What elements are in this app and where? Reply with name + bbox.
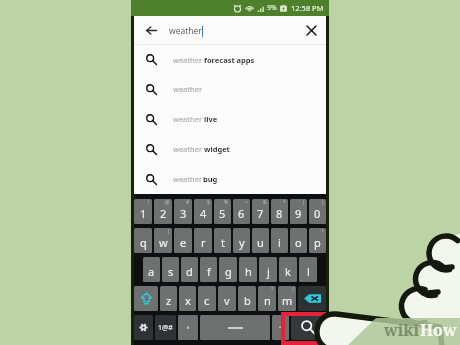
button[interactable]: * xyxy=(271,199,288,224)
button[interactable]: z xyxy=(160,286,177,311)
staticText: weather xyxy=(173,144,204,154)
button[interactable]: | xyxy=(154,228,172,253)
button[interactable]: + xyxy=(309,228,326,253)
staticText: 1 xyxy=(140,206,147,221)
button[interactable]: u xyxy=(252,228,269,253)
button[interactable]: , xyxy=(178,315,198,340)
button[interactable]: s xyxy=(162,257,179,282)
button[interactable]: / xyxy=(278,286,296,311)
button[interactable]: y xyxy=(233,228,250,253)
staticText: $ xyxy=(207,199,210,206)
button[interactable]: h xyxy=(239,257,257,282)
button[interactable]: ? xyxy=(258,286,276,311)
button[interactable]: Backspace xyxy=(298,286,326,311)
button[interactable]: weather xyxy=(134,74,326,104)
button[interactable]: % xyxy=(214,199,231,224)
staticText: n xyxy=(264,293,271,308)
staticText: q xyxy=(140,235,147,250)
staticText: # xyxy=(186,199,190,206)
button[interactable]: l xyxy=(299,257,317,282)
staticText: r xyxy=(201,235,206,250)
button[interactable]: ) xyxy=(309,199,326,224)
button[interactable]: Clear search xyxy=(296,16,326,45)
button[interactable]: q xyxy=(134,228,152,253)
button[interactable]: weather xyxy=(134,104,326,134)
staticText: 9% xyxy=(267,3,277,13)
button[interactable]: r xyxy=(194,228,212,253)
staticText: + xyxy=(321,228,324,235)
button[interactable]: . xyxy=(272,315,289,340)
staticText: x xyxy=(185,293,191,308)
button[interactable]: g xyxy=(219,257,237,282)
button[interactable]: weather xyxy=(134,134,326,164)
button[interactable]: 1@# xyxy=(155,315,176,340)
staticText: ! xyxy=(148,199,150,206)
staticText: p xyxy=(314,235,321,250)
staticText: b xyxy=(244,293,251,308)
staticText: 4 xyxy=(200,206,207,221)
staticText: widget xyxy=(204,144,230,154)
button[interactable]: Back xyxy=(134,16,169,45)
button[interactable] xyxy=(134,286,158,311)
button[interactable]: & xyxy=(252,199,269,224)
button[interactable]: ( xyxy=(290,199,307,224)
button[interactable]: ^ xyxy=(233,199,250,224)
staticText: k xyxy=(285,264,291,279)
staticText: wiki xyxy=(384,319,420,341)
staticText: 5 xyxy=(219,206,226,221)
button[interactable]: e xyxy=(174,228,192,253)
staticText: 0 xyxy=(314,206,321,221)
button[interactable]: k xyxy=(279,257,297,282)
staticText: a xyxy=(148,264,155,279)
button[interactable]: o xyxy=(290,228,307,253)
staticText: t xyxy=(221,235,225,250)
button[interactable]: # xyxy=(174,199,192,224)
staticText: ? xyxy=(271,286,274,293)
button[interactable]: i xyxy=(271,228,288,253)
button[interactable]: weather xyxy=(134,45,326,74)
staticText: h xyxy=(245,264,252,279)
button[interactable]: Settings xyxy=(134,315,153,340)
staticText: 2 xyxy=(160,206,167,221)
button[interactable]: ! xyxy=(134,199,152,224)
staticText: y xyxy=(239,235,245,250)
button[interactable]: weather xyxy=(134,164,326,194)
button[interactable]: v xyxy=(218,286,236,311)
staticText: @ xyxy=(165,199,170,206)
staticText: d xyxy=(186,264,193,279)
staticText: o xyxy=(295,235,302,250)
staticText: live xyxy=(204,114,218,124)
staticText: weather xyxy=(173,114,204,124)
staticText: ) xyxy=(322,199,324,206)
staticText: / xyxy=(292,286,294,293)
staticText: g xyxy=(225,264,232,279)
staticText: weather xyxy=(173,84,203,94)
button[interactable]: x xyxy=(179,286,196,311)
button[interactable]: Space xyxy=(200,315,270,340)
button[interactable]: f xyxy=(200,257,217,282)
staticText: 7 xyxy=(257,206,264,221)
staticText: weather xyxy=(169,25,202,37)
staticText: j xyxy=(267,264,270,279)
staticText: i xyxy=(278,235,281,250)
staticText: z xyxy=(166,293,172,308)
button[interactable]: $ xyxy=(194,199,212,224)
staticText: v xyxy=(224,293,230,308)
button[interactable]: Search xyxy=(291,315,326,340)
button[interactable]: b xyxy=(238,286,256,311)
staticText: c xyxy=(204,293,210,308)
button[interactable]: d xyxy=(181,257,198,282)
staticText: ^ xyxy=(245,199,248,206)
staticText: 8 xyxy=(276,206,283,221)
staticText: % xyxy=(224,199,229,206)
button[interactable]: c xyxy=(198,286,216,311)
staticText: u xyxy=(257,235,264,250)
button[interactable]: j xyxy=(259,257,277,282)
button[interactable]: @ xyxy=(154,199,172,224)
button[interactable]: t xyxy=(214,228,231,253)
staticText: 12:58 PM xyxy=(291,3,324,13)
staticText: weather xyxy=(173,174,203,184)
staticText: 3 xyxy=(180,206,187,221)
staticText: | xyxy=(167,228,170,235)
button[interactable]: a xyxy=(143,257,160,282)
